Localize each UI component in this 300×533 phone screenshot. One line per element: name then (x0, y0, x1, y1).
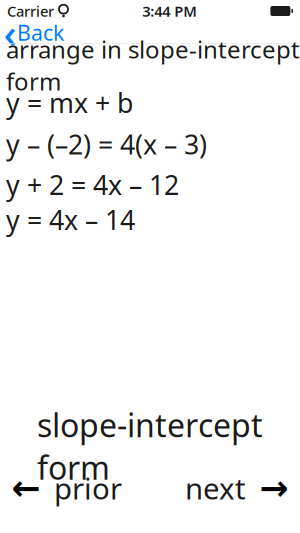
button[interactable]: ← (6, 463, 128, 512)
staticText: prior (54, 468, 122, 507)
staticText: next (185, 468, 246, 507)
staticText: slope-intercept form (37, 403, 263, 488)
staticText: y = 4x – 14 (6, 202, 135, 237)
staticText: Carrier (7, 1, 54, 21)
staticText: y + 2 = 4x – 12 (6, 167, 179, 202)
staticText: ← (11, 468, 40, 508)
staticText: arrange in slope-intercept form (6, 33, 300, 97)
staticText: y = mx + b (6, 85, 133, 120)
staticText: Back (17, 18, 64, 47)
staticText: ‹ (3, 6, 16, 59)
staticText: 3:44 PM (142, 1, 197, 21)
button[interactable]: ‹ (0, 17, 74, 48)
staticText: → (259, 468, 288, 508)
staticText: y – (–2) = 4(x – 3) (6, 126, 207, 162)
button[interactable]: next (179, 463, 294, 512)
